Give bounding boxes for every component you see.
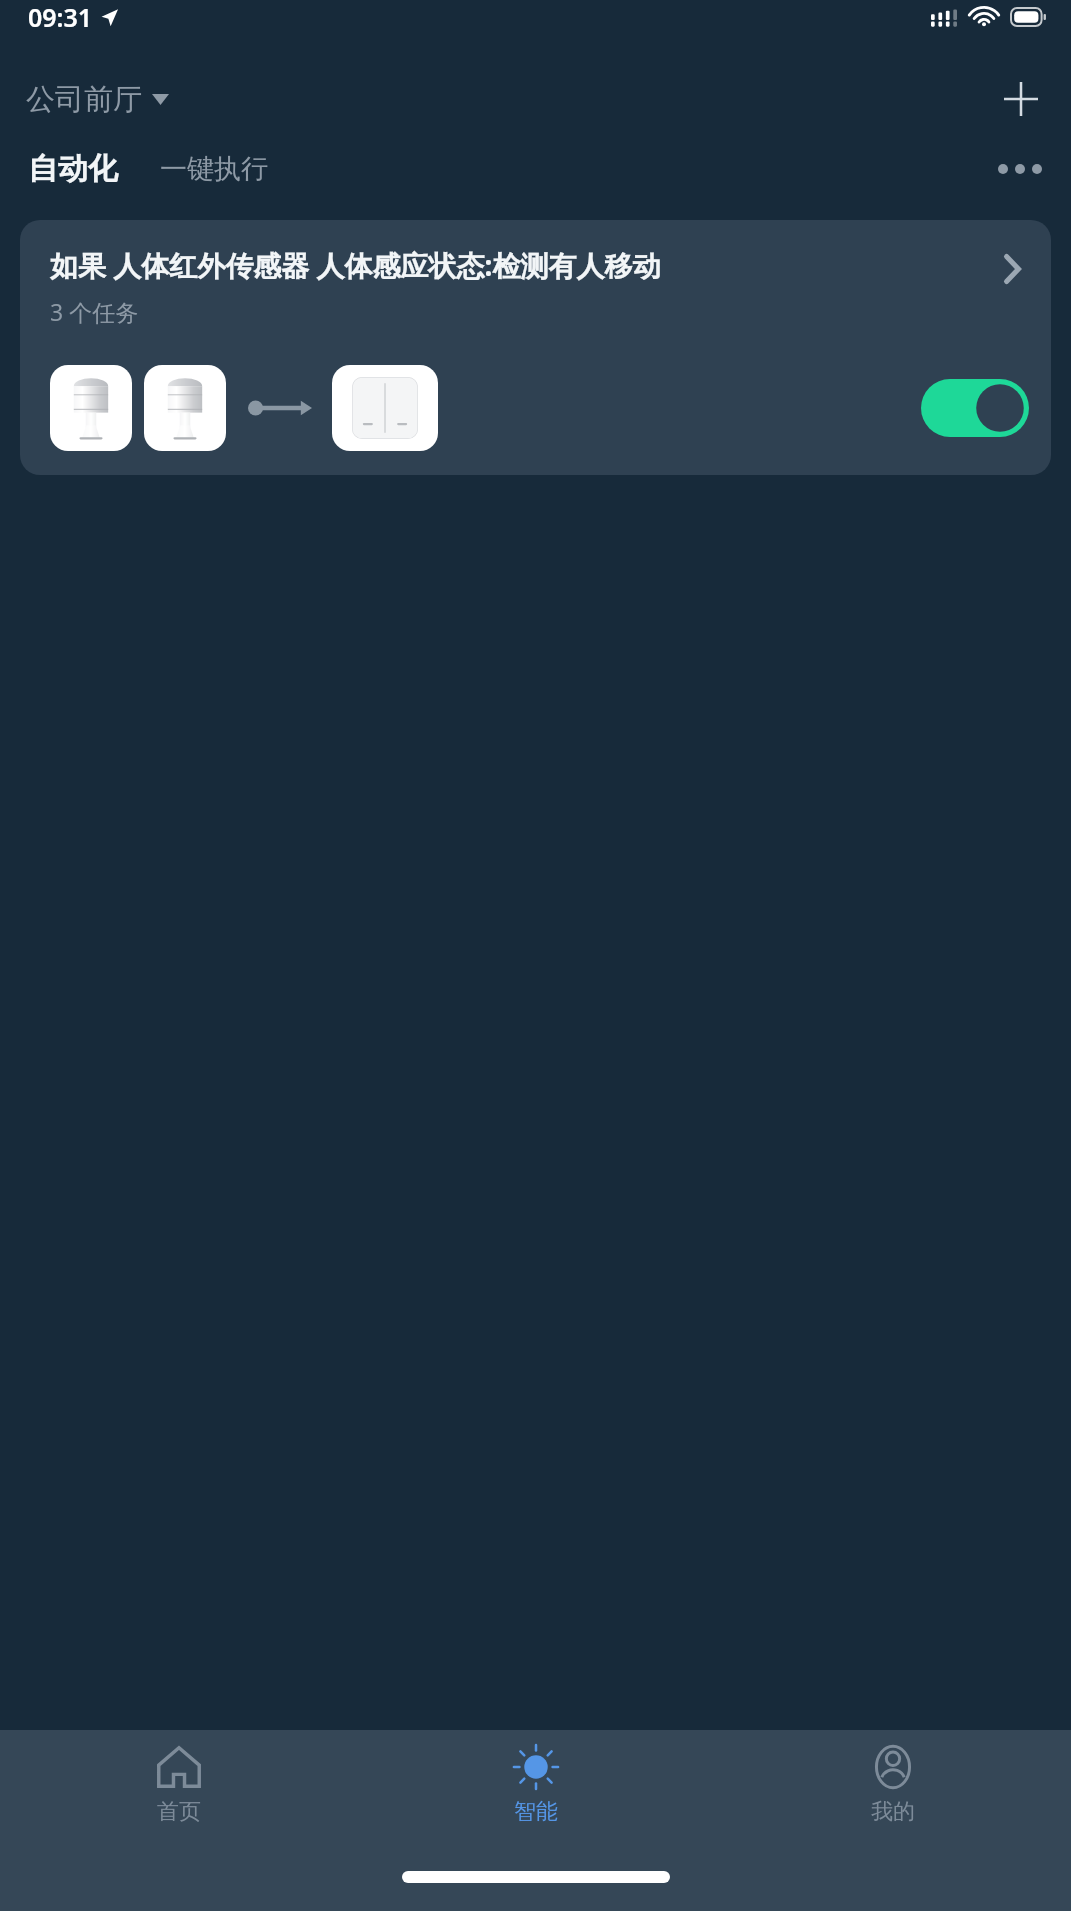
- button[interactable]: Enabled toggle: [921, 379, 1029, 437]
- staticText: 09:31: [28, 0, 93, 34]
- button[interactable]: 自动化: [24, 144, 122, 194]
- button[interactable]: 首页: [0, 1730, 357, 1850]
- button[interactable]: Add: [993, 71, 1049, 127]
- staticText: 智能: [514, 1798, 558, 1826]
- button[interactable]: 一键执行: [156, 146, 272, 192]
- button[interactable]: More options: [993, 142, 1047, 196]
- button[interactable]: 智能: [357, 1730, 714, 1850]
- staticText: 一键执行: [160, 152, 268, 186]
- staticText: 公司前厅: [26, 81, 142, 118]
- staticText: 首页: [157, 1798, 201, 1826]
- button[interactable]: 公司前厅: [24, 75, 171, 124]
- staticText: 自动化: [28, 150, 118, 188]
- staticText: 如果 人体红外传感器 人体感应状态:检测有人移动: [50, 246, 983, 284]
- button[interactable]: 我的: [714, 1730, 1071, 1850]
- staticText: 我的: [871, 1798, 915, 1826]
- staticText: 3 个任务: [50, 296, 139, 327]
- button[interactable]: 如果 人体红外传感器 人体感应状态:检测有人移动: [20, 220, 1051, 475]
